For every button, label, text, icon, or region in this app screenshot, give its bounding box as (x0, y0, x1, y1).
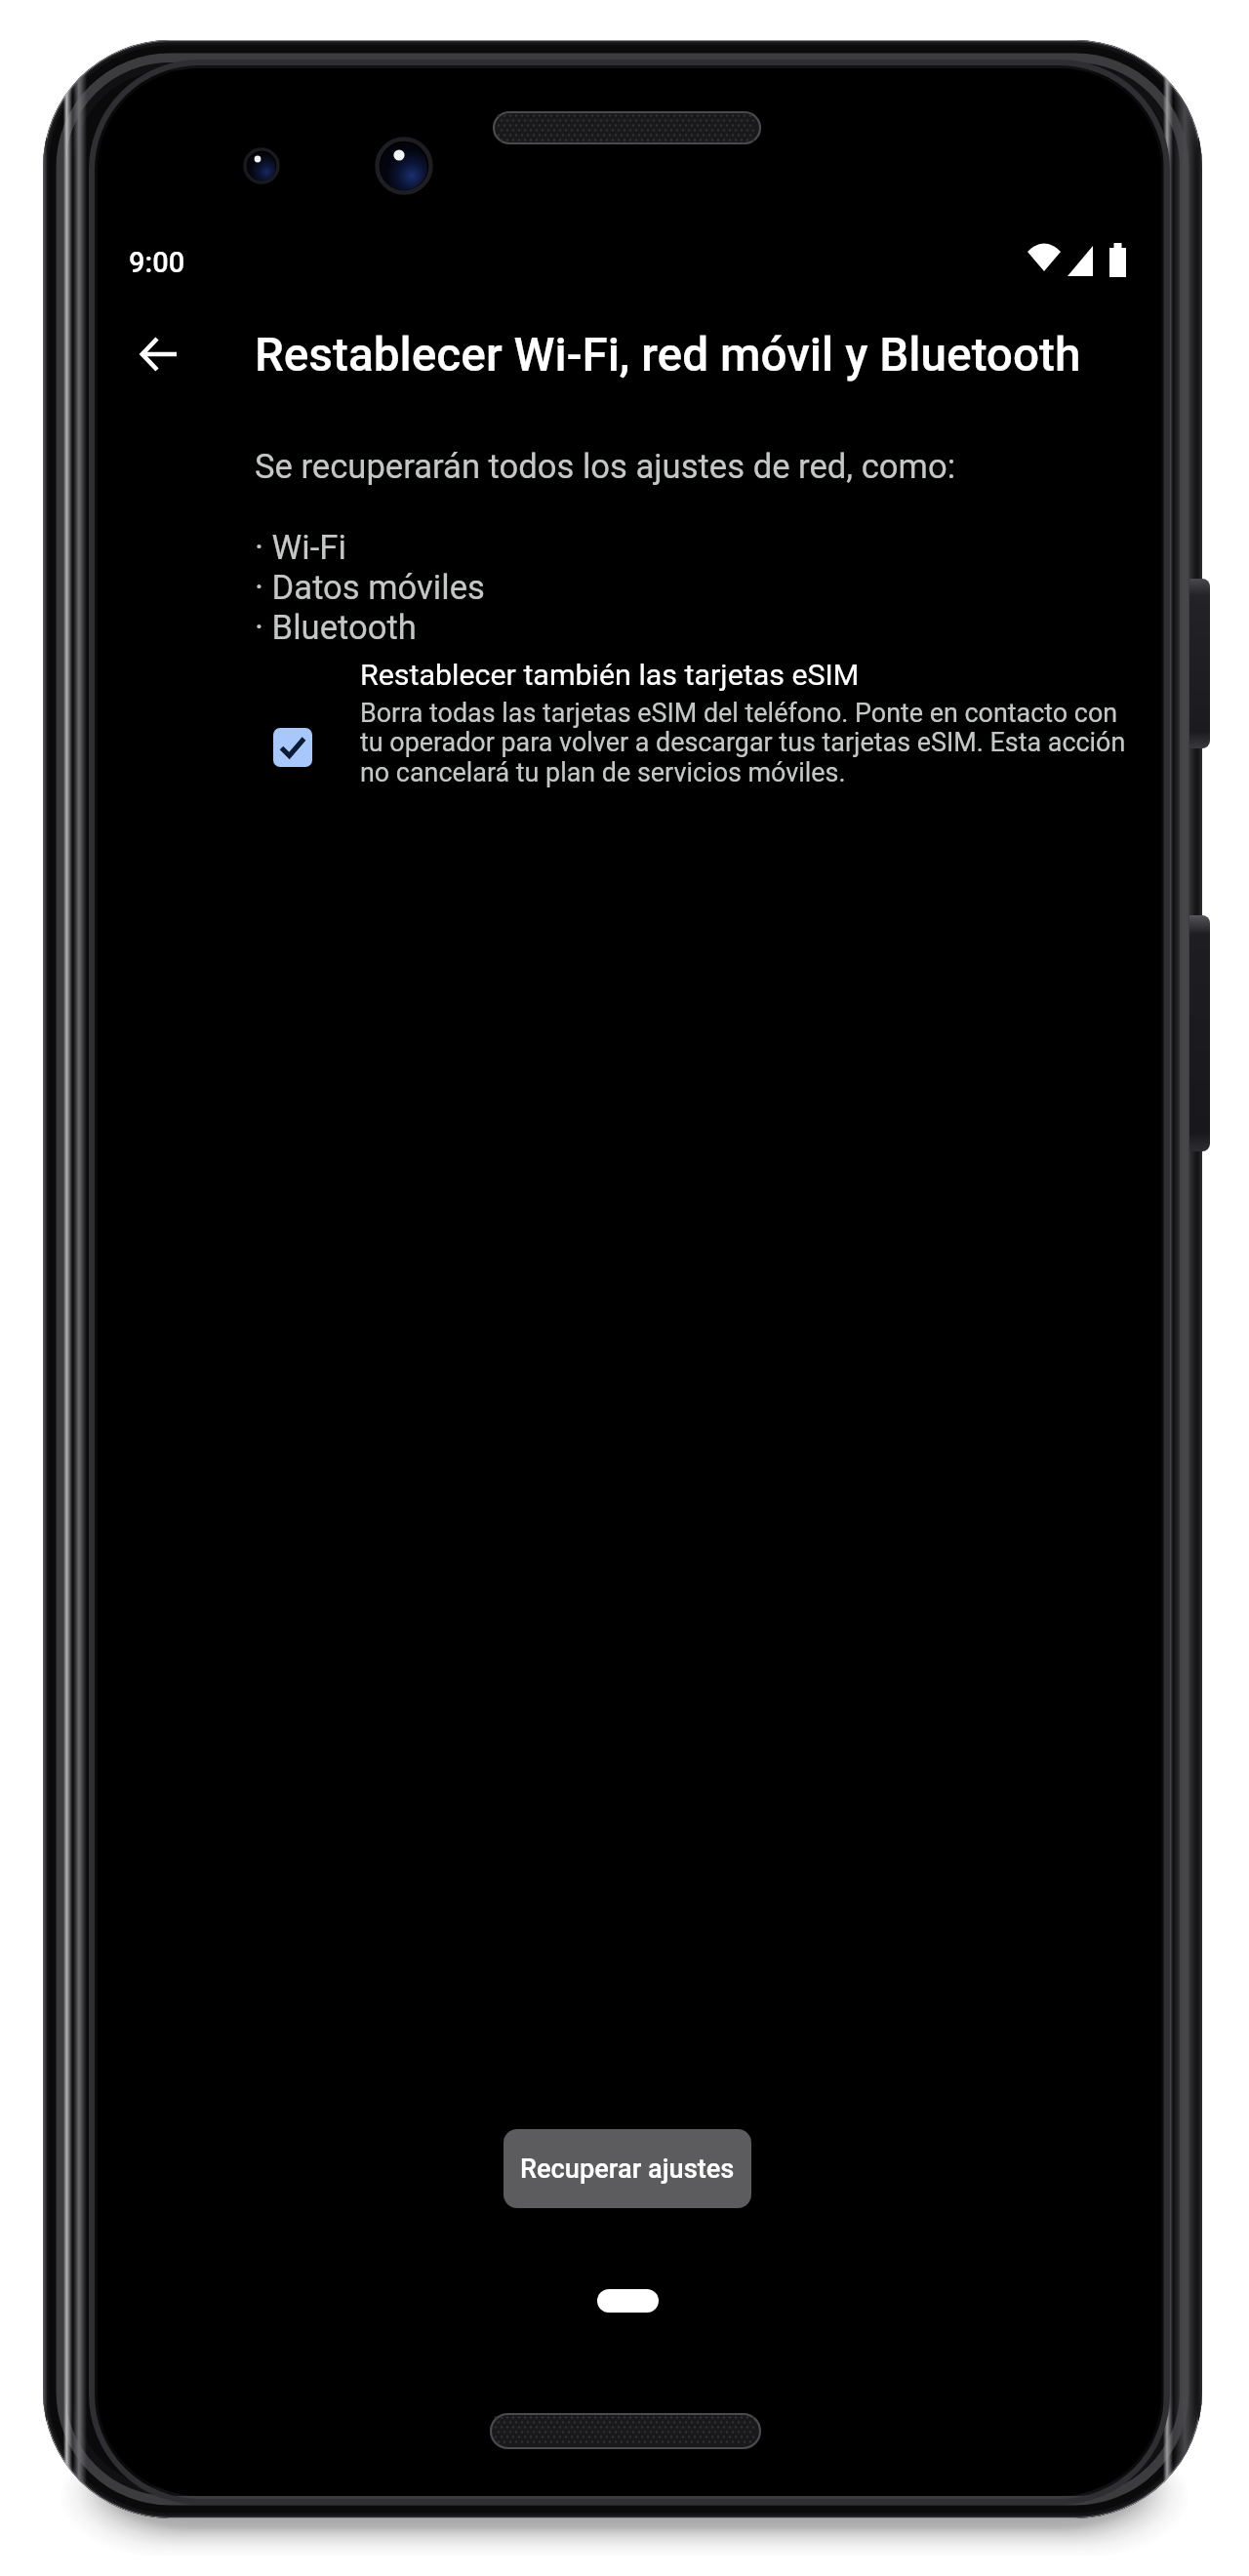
button[interactable]: Recuperar ajustes (504, 2129, 751, 2208)
button[interactable]: Atrás (120, 315, 198, 393)
staticText: · Wi-Fi · Datos móviles · Bluetooth (255, 528, 485, 648)
staticText: 9:00 (129, 246, 185, 279)
staticText: Restablecer Wi-Fi, red móvil y Bluetooth (255, 328, 1081, 382)
staticText: Restablecer también las tarjetas eSIM (360, 658, 860, 693)
staticText: Se recuperarán todos los ajustes de red,… (255, 447, 956, 487)
staticText: Recuperar ajustes (520, 2153, 735, 2185)
staticText: Borra todas las tarjetas eSIM del teléfo… (360, 698, 1141, 788)
button[interactable]: Restablecer también las tarjetas eSIM (254, 708, 332, 786)
